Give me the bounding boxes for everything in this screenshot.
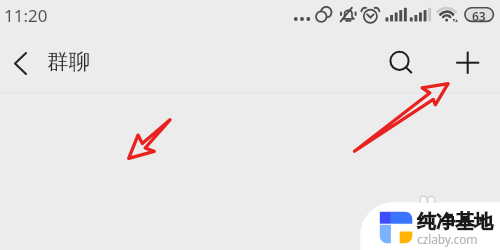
staticText: 纯净基地 [417, 210, 493, 234]
staticText: 11:20 [4, 4, 48, 27]
staticText: 群聊 [47, 48, 90, 75]
staticText: czlaby.com [417, 231, 478, 247]
button[interactable]: Search [382, 38, 418, 92]
button[interactable]: Back [3, 38, 38, 92]
staticText: 63 [472, 8, 486, 24]
button[interactable]: Add [450, 38, 486, 92]
